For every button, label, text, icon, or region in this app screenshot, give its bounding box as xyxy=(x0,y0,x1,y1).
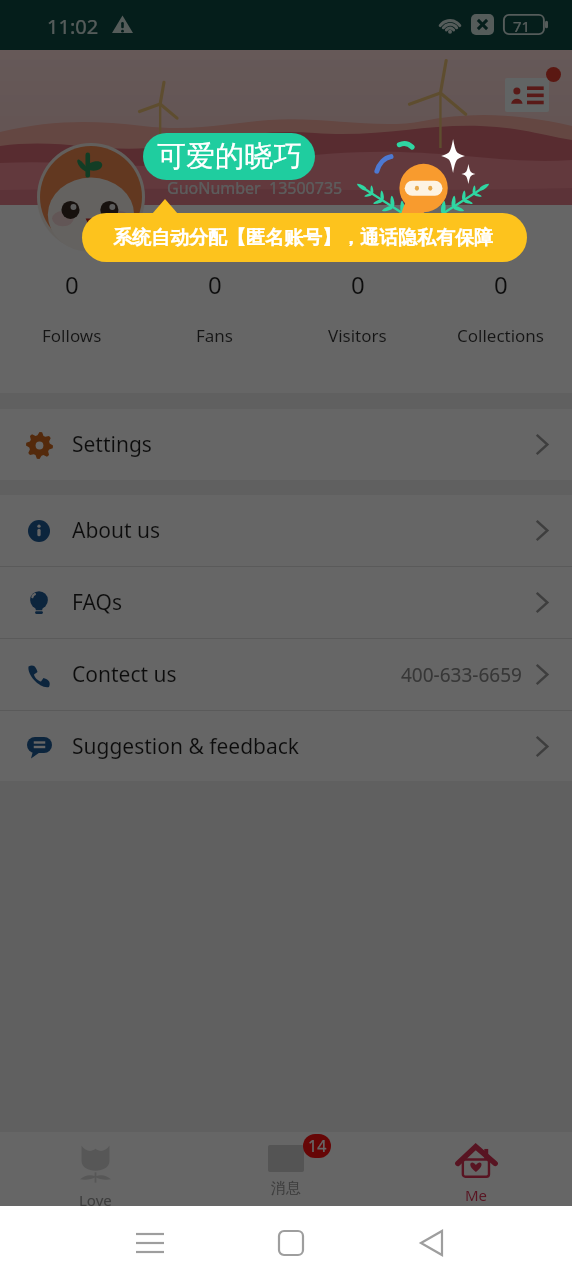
staticText: Collections xyxy=(457,324,545,347)
staticText: 可爱的晓巧 xyxy=(157,138,302,175)
staticText: Follows xyxy=(42,324,102,347)
button[interactable]: 0 xyxy=(286,205,429,393)
staticText: 71 xyxy=(513,16,531,36)
staticText: GuoNumber 13500735 xyxy=(167,177,343,199)
staticText: 0 xyxy=(351,268,365,301)
staticText: Settings xyxy=(72,430,152,459)
staticText: 11:02 xyxy=(47,13,99,40)
button[interactable]: Home xyxy=(256,1206,326,1280)
button[interactable]: About us xyxy=(0,495,572,566)
staticText: 14 xyxy=(308,1135,327,1157)
staticText: 400-633-6659 xyxy=(401,662,522,688)
staticText: 0 xyxy=(65,268,79,301)
button[interactable]: Settings xyxy=(0,409,572,480)
button[interactable]: Recents xyxy=(115,1206,185,1280)
staticText: Visitors xyxy=(328,324,387,347)
button[interactable]: 0 xyxy=(429,205,572,393)
staticText: 消息 xyxy=(271,1179,301,1198)
button[interactable]: Contacts xyxy=(505,78,549,112)
button[interactable]: Suggestion & feedback xyxy=(0,711,572,781)
button[interactable]: FAQs xyxy=(0,567,572,638)
staticText: Me xyxy=(465,1185,488,1205)
button[interactable]: Contect us xyxy=(0,639,572,710)
staticText: 0 xyxy=(494,268,508,301)
staticText: Love xyxy=(79,1190,112,1206)
button[interactable]: 可爱的晓巧 xyxy=(143,133,315,180)
button[interactable]: Back xyxy=(398,1206,468,1280)
staticText: Fans xyxy=(196,324,234,347)
staticText: 系统自动分配【匿名账号】，通话隐私有保障 xyxy=(113,226,493,250)
button[interactable]: 0 xyxy=(0,205,143,393)
staticText: About us xyxy=(72,516,161,545)
button[interactable]: Me xyxy=(381,1132,572,1206)
button[interactable]: Love xyxy=(0,1132,190,1206)
button[interactable]: 0 xyxy=(143,205,286,393)
staticText: Contect us xyxy=(72,660,177,689)
staticText: 0 xyxy=(208,268,222,301)
staticText: Suggestion & feedback xyxy=(72,732,300,761)
button[interactable]: 14 xyxy=(190,1132,381,1206)
staticText: FAQs xyxy=(72,588,122,617)
